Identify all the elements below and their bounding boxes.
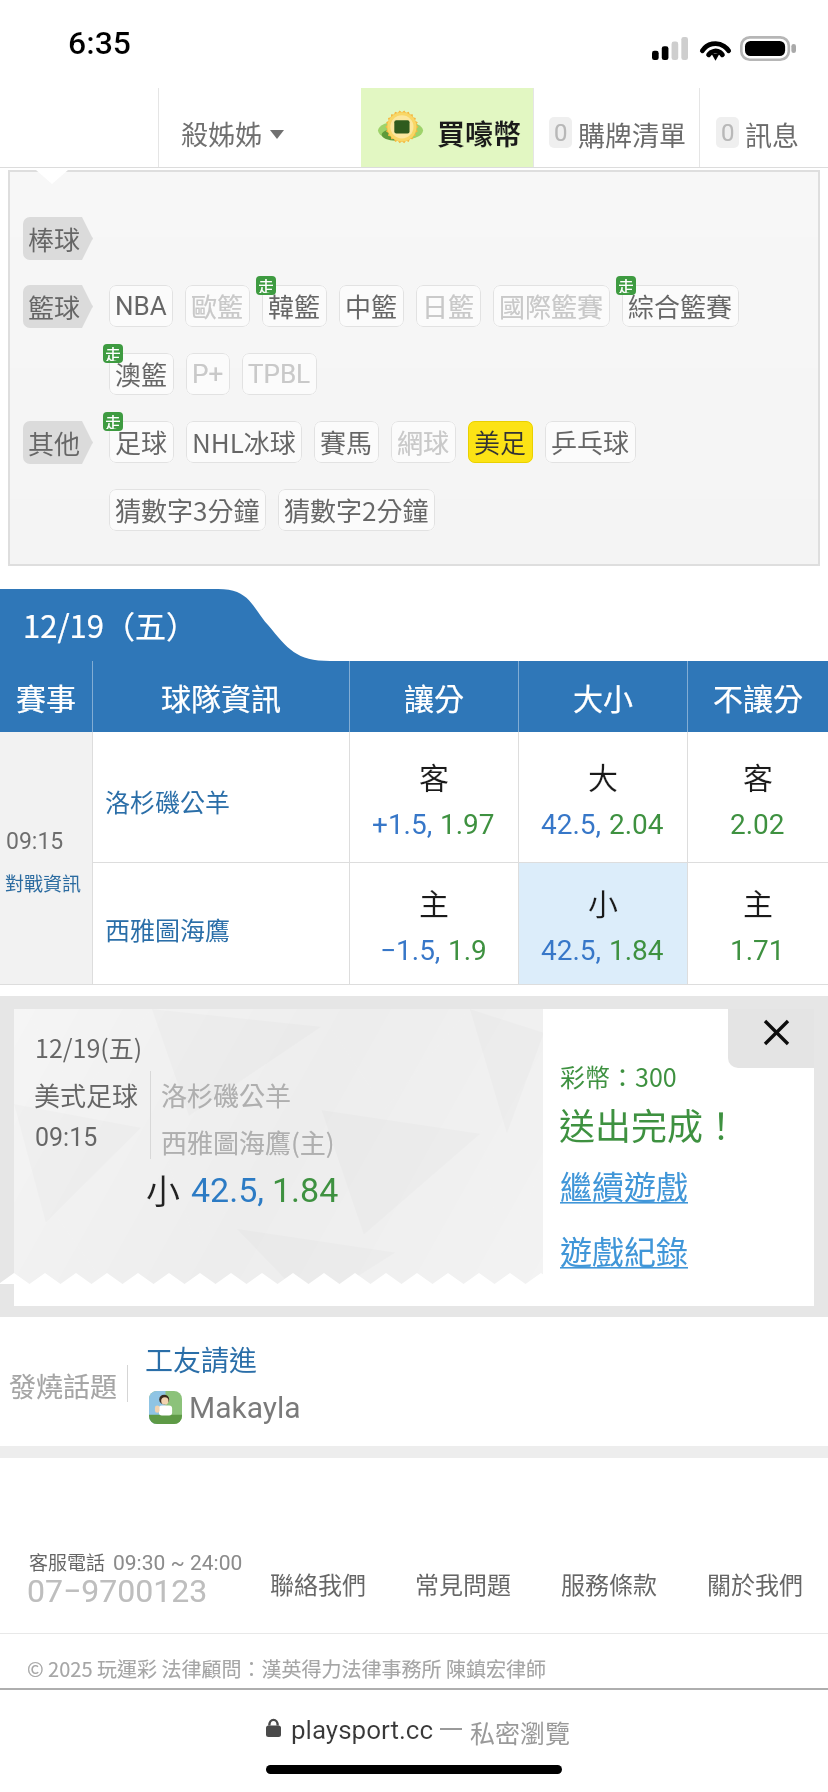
staticText: 日籃 (422, 287, 475, 325)
button[interactable]: 猜數字2分鐘 (278, 489, 435, 531)
staticText: © 2025 玩運彩 法律顧問：漢英得力法律事務所 陳鎮宏律師 (27, 1654, 546, 1683)
staticText: 走 (105, 344, 122, 361)
button[interactable]: 常見問題 (415, 1566, 511, 1601)
staticText: 籃球 (28, 288, 81, 326)
button[interactable]: 歐籃 (185, 285, 250, 327)
button[interactable]: 不讓分 (687, 661, 828, 732)
button[interactable]: 關於我們 (707, 1566, 803, 1601)
staticText: 訊息 (745, 115, 799, 154)
button[interactable]: 工友請進 (145, 1339, 258, 1380)
button[interactable]: 國際籃賽 (493, 285, 610, 327)
staticText: 12/19(五) (35, 1029, 143, 1065)
staticText: −1.5, (380, 934, 441, 967)
staticText: 其他 (28, 424, 81, 462)
staticText: 1.84 (272, 1170, 339, 1210)
button[interactable]: 西雅圖海鷹 (92, 862, 349, 985)
button[interactable]: 賽馬 (314, 421, 379, 463)
button[interactable]: 網球 (391, 421, 456, 463)
staticText: 42.5, (541, 934, 602, 967)
staticText: 客服電話 (29, 1548, 106, 1576)
staticText: 0 (554, 119, 568, 147)
button[interactable]: 小 (518, 862, 687, 985)
staticText: 6:35 (68, 24, 131, 62)
button[interactable]: 乒乓球 (545, 421, 636, 463)
staticText: 買嚎幣 (437, 113, 522, 154)
staticText: 2.04 (609, 808, 664, 841)
staticText: 1.71 (730, 934, 785, 967)
staticText: 歐籃 (191, 287, 244, 325)
button[interactable]: NHL冰球 (186, 421, 302, 463)
staticText: 購牌清單 (578, 115, 686, 154)
staticText: 不讓分 (713, 675, 803, 718)
staticText: 發燒話題 (9, 1366, 117, 1405)
staticText: 西雅圖海鷹(主) (161, 1123, 335, 1161)
staticText: 洛杉磯公羊 (105, 783, 231, 819)
staticText: 客 (419, 754, 449, 797)
button[interactable]: 聯絡我們 (270, 1566, 366, 1601)
button[interactable]: 中籃 (339, 285, 404, 327)
button[interactable] (700, 88, 828, 168)
staticText: 小 (588, 880, 618, 923)
staticText: 美足 (474, 423, 527, 461)
staticText: +1.5, (372, 808, 433, 841)
staticText: 賽馬 (320, 423, 373, 461)
staticText: 西雅圖海鷹 (105, 911, 231, 947)
staticText: 09:15 (6, 828, 64, 855)
staticText: NHL冰球 (192, 423, 296, 461)
staticText: 猜數字3分鐘 (115, 491, 260, 529)
button[interactable]: 日籃 (416, 285, 481, 327)
staticText: 12/19（五） (23, 602, 197, 647)
staticText: 走 (105, 412, 122, 429)
button[interactable]: 繼續遊戲 (560, 1162, 689, 1208)
button[interactable]: 大小 (518, 661, 687, 732)
staticText: 主 (743, 880, 773, 923)
button[interactable]: 澳籃 (109, 353, 174, 395)
button[interactable]: 足球 (109, 421, 174, 463)
button[interactable]: 其他 (23, 421, 94, 464)
staticText: 1.84 (609, 934, 664, 967)
button[interactable]: 球隊資訊 (92, 661, 349, 732)
button[interactable]: TPBL (242, 353, 317, 395)
button[interactable]: 大 (518, 732, 687, 862)
button[interactable]: 洛杉磯公羊 (92, 732, 349, 862)
staticText: 美式足球 (34, 1076, 139, 1114)
staticText: NBA (115, 291, 167, 321)
staticText: 網球 (397, 423, 450, 461)
button[interactable]: 客 (687, 732, 828, 862)
staticText: 42.5, (541, 808, 602, 841)
button[interactable]: 主 (349, 862, 518, 985)
button[interactable]: 客 (349, 732, 518, 862)
staticText: 澳籃 (115, 355, 168, 393)
staticText: 彩幣：300 (560, 1058, 677, 1094)
button[interactable]: Close (728, 1009, 814, 1068)
button[interactable]: 賽事 (0, 661, 92, 732)
staticText: 客 (743, 754, 773, 797)
button[interactable] (534, 88, 699, 168)
staticText: 棒球 (28, 220, 81, 258)
button[interactable]: 棒球 (23, 217, 94, 260)
button[interactable]: 猜數字3分鐘 (109, 489, 266, 531)
button[interactable]: 服務條款 (561, 1566, 657, 1601)
staticText: 小 (146, 1165, 180, 1214)
button[interactable]: NBA (109, 285, 173, 327)
button[interactable]: 美足 (468, 421, 533, 463)
button[interactable]: 主 (687, 862, 828, 985)
staticText: 2.02 (730, 808, 785, 841)
staticText: 送出完成！ (559, 1098, 740, 1150)
button[interactable]: P+ (186, 353, 230, 395)
staticText: 猜數字2分鐘 (284, 491, 429, 529)
button[interactable]: 綜合籃賽 (622, 285, 739, 327)
button[interactable]: Makayla (149, 1390, 301, 1425)
button[interactable] (158, 88, 361, 168)
staticText: 乒乓球 (551, 423, 630, 461)
button[interactable]: 遊戲紀錄 (560, 1227, 689, 1273)
staticText: playsport.cc (291, 1715, 434, 1745)
button[interactable]: 讓分 (349, 661, 518, 732)
staticText: 綜合籃賽 (628, 287, 733, 325)
button[interactable]: 對戰資訊 (5, 869, 82, 897)
staticText: 私密瀏覽 (470, 1714, 571, 1750)
button[interactable]: 籃球 (23, 285, 94, 328)
button[interactable] (361, 88, 533, 168)
staticText: 洛杉磯公羊 (161, 1076, 292, 1114)
button[interactable]: 韓籃 (262, 285, 327, 327)
